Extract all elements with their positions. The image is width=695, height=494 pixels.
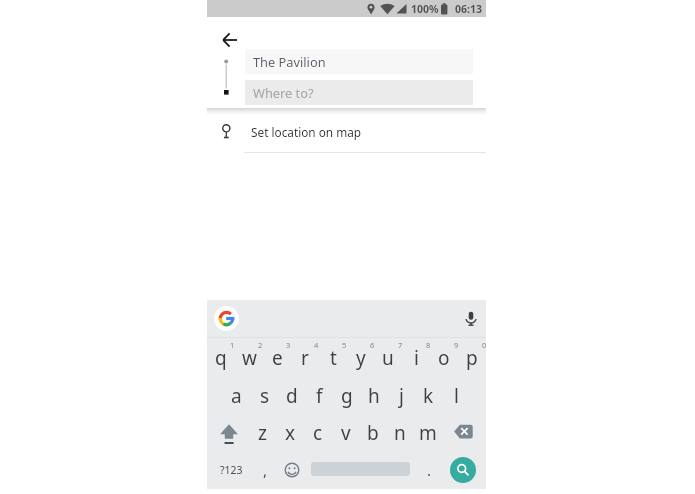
staticText: x <box>285 420 296 446</box>
button[interactable]: w <box>235 339 263 377</box>
staticText: 2 <box>258 340 263 350</box>
staticText: z <box>258 420 267 446</box>
button[interactable]: a <box>223 377 250 415</box>
button[interactable]: m <box>414 414 441 451</box>
button[interactable]: r <box>291 339 319 377</box>
staticText: t <box>330 345 337 371</box>
staticText: p <box>466 345 478 371</box>
staticText: 06:13 <box>455 2 482 16</box>
staticText: l <box>454 383 459 409</box>
button[interactable]: o <box>430 339 458 377</box>
button[interactable]: i <box>402 339 430 377</box>
staticText: r <box>301 345 309 371</box>
staticText: 9 <box>454 340 459 350</box>
staticText: e <box>272 345 283 371</box>
staticText: f <box>316 383 323 409</box>
staticText: s <box>260 383 270 409</box>
staticText: 1 <box>230 340 235 350</box>
button[interactable]: f <box>306 377 333 415</box>
staticText: k <box>423 383 434 409</box>
button[interactable]: z <box>249 414 276 451</box>
staticText: 4 <box>314 340 319 350</box>
staticText: 8 <box>426 340 431 350</box>
button[interactable]: e <box>263 339 291 377</box>
button[interactable]: Set location on map <box>207 115 486 153</box>
button[interactable] <box>214 306 239 331</box>
button[interactable]: h <box>360 377 387 415</box>
button[interactable]: n <box>386 414 413 451</box>
button[interactable]: c <box>304 414 331 451</box>
button[interactable]: ?123 <box>215 450 247 489</box>
staticText: i <box>414 345 419 371</box>
button[interactable]: Where to? <box>245 80 473 105</box>
button[interactable]: x <box>277 414 304 451</box>
button[interactable]: t <box>319 339 347 377</box>
staticText: 5 <box>342 340 347 350</box>
button[interactable]: l <box>443 377 470 415</box>
staticText: b <box>367 420 379 446</box>
staticText: 3 <box>286 340 291 350</box>
button[interactable] <box>215 413 243 450</box>
staticText: a <box>231 383 242 409</box>
staticText: 6 <box>370 340 375 350</box>
button[interactable]: y <box>347 339 375 377</box>
staticText: g <box>341 383 353 409</box>
staticText: Where to? <box>253 84 314 101</box>
staticText: n <box>394 420 406 446</box>
staticText: c <box>313 420 323 446</box>
staticText: q <box>215 345 227 371</box>
button[interactable]: g <box>333 377 360 415</box>
button[interactable]: The Pavilion <box>245 49 473 74</box>
staticText: 0 <box>482 340 487 350</box>
button[interactable]: v <box>332 414 359 451</box>
staticText: h <box>368 383 380 409</box>
button[interactable]: p <box>458 339 486 377</box>
button[interactable] <box>284 462 300 478</box>
staticText: w <box>242 345 257 371</box>
button[interactable]: j <box>388 377 415 415</box>
staticText: 100% <box>411 2 439 16</box>
button[interactable]: s <box>251 377 278 415</box>
button[interactable]: d <box>278 377 305 415</box>
button[interactable] <box>450 413 478 450</box>
button[interactable]: . <box>419 450 439 489</box>
staticText: o <box>438 345 450 371</box>
staticText: . <box>427 460 432 480</box>
staticText: 7 <box>398 340 403 350</box>
button[interactable]: , <box>255 450 275 489</box>
staticText: , <box>263 460 268 480</box>
button[interactable] <box>463 311 479 327</box>
button[interactable]: b <box>359 414 386 451</box>
staticText: The Pavilion <box>253 53 326 70</box>
button[interactable] <box>220 30 240 50</box>
button[interactable]: u <box>374 339 402 377</box>
staticText: Set location on map <box>251 124 362 140</box>
staticText: u <box>382 345 394 371</box>
staticText: d <box>286 383 298 409</box>
staticText: ?123 <box>220 463 243 477</box>
staticText: y <box>356 345 366 371</box>
button[interactable]: k <box>415 377 442 415</box>
button[interactable] <box>450 457 476 483</box>
button[interactable]: q <box>207 339 235 377</box>
staticText: j <box>399 383 404 409</box>
staticText: m <box>419 420 437 446</box>
staticText: v <box>341 420 351 446</box>
